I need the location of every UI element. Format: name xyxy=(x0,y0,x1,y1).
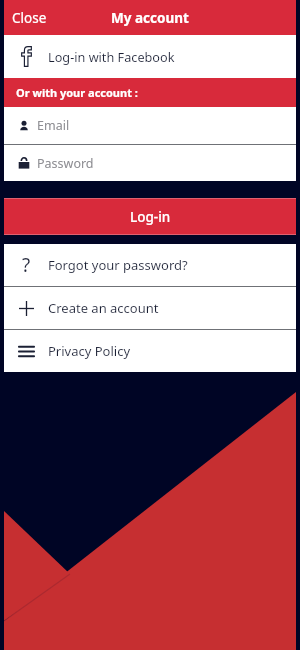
staticText: Password xyxy=(37,155,94,172)
other: Email xyxy=(18,120,30,132)
staticText: ? xyxy=(22,252,31,278)
button[interactable]: Close xyxy=(4,3,57,33)
button[interactable]: Privacy Policy xyxy=(4,330,296,372)
staticText: Forgot your password? xyxy=(48,256,188,274)
button[interactable]: Create an account xyxy=(4,287,296,329)
staticText: Log-in xyxy=(130,208,171,226)
staticText: Create an account xyxy=(48,299,159,317)
staticText: Log-in with Facebook xyxy=(48,48,175,65)
staticText: Email xyxy=(37,117,70,134)
other: Password xyxy=(18,157,30,169)
staticText: My account xyxy=(111,9,189,27)
button[interactable]: Log-in xyxy=(4,198,296,235)
staticText: Privacy Policy xyxy=(48,342,131,360)
button[interactable]: Email xyxy=(4,107,296,144)
button[interactable]: Log-in with Facebook xyxy=(4,35,296,78)
button[interactable]: ? xyxy=(4,244,296,286)
button[interactable]: Password xyxy=(4,145,296,181)
staticText: Or with your account : xyxy=(16,85,138,100)
